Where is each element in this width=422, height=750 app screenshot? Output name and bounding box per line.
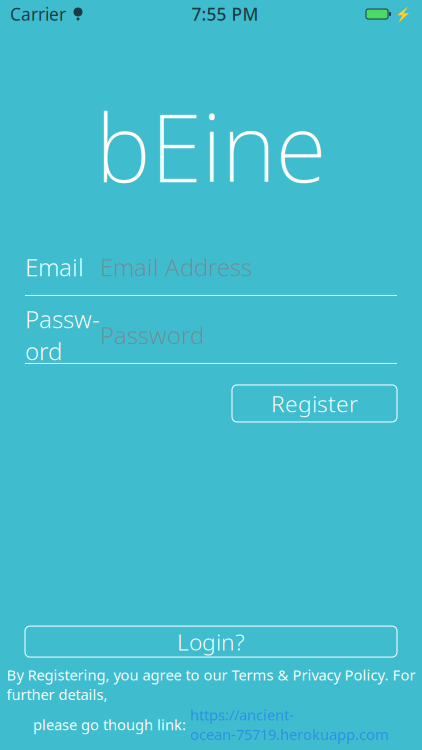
staticText: https://ancient-ocean-75719.herokuapp.co… xyxy=(190,705,389,744)
staticText: Register xyxy=(271,388,358,418)
button[interactable]: https://ancient-ocean-75719.herokuapp.co… xyxy=(190,705,389,744)
staticText: bEine xyxy=(95,84,326,208)
staticText: Carrier xyxy=(10,2,66,25)
staticText: Login? xyxy=(177,626,245,657)
staticText: By Registering, you agree to our Terms &… xyxy=(6,665,415,704)
staticText: ⚡ xyxy=(395,6,412,22)
staticText: Password xyxy=(25,303,100,367)
button[interactable]: Login? xyxy=(25,626,397,657)
staticText: Password xyxy=(100,319,204,351)
staticText: please go though link: xyxy=(33,715,190,734)
staticText: 7:55 PM xyxy=(191,2,258,25)
staticText: Email Address xyxy=(100,251,252,283)
button[interactable]: Register xyxy=(232,385,397,422)
staticText: Email xyxy=(25,251,84,283)
